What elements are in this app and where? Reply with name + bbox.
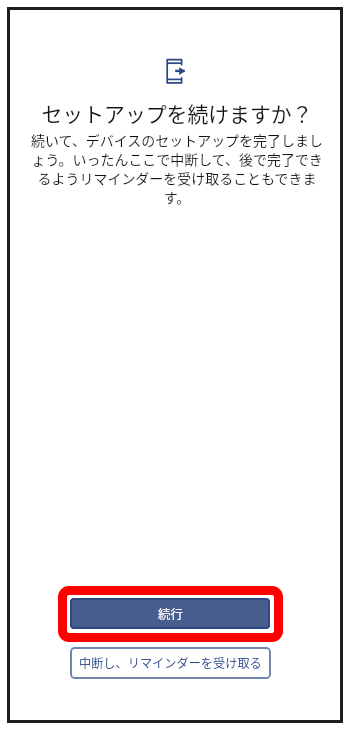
- staticText: 続行: [158, 605, 183, 623]
- button[interactable]: 中断し、リマインダーを受け取る: [70, 647, 271, 679]
- staticText: 続いて、デバイスのセットアップを完了しましょう。いったんここで中断して、後で完了…: [29, 130, 325, 207]
- button[interactable]: 続行: [70, 598, 270, 629]
- staticText: セットアップを続けますか？: [15, 98, 339, 128]
- staticText: 中断し、リマインダーを受け取る: [79, 654, 262, 672]
